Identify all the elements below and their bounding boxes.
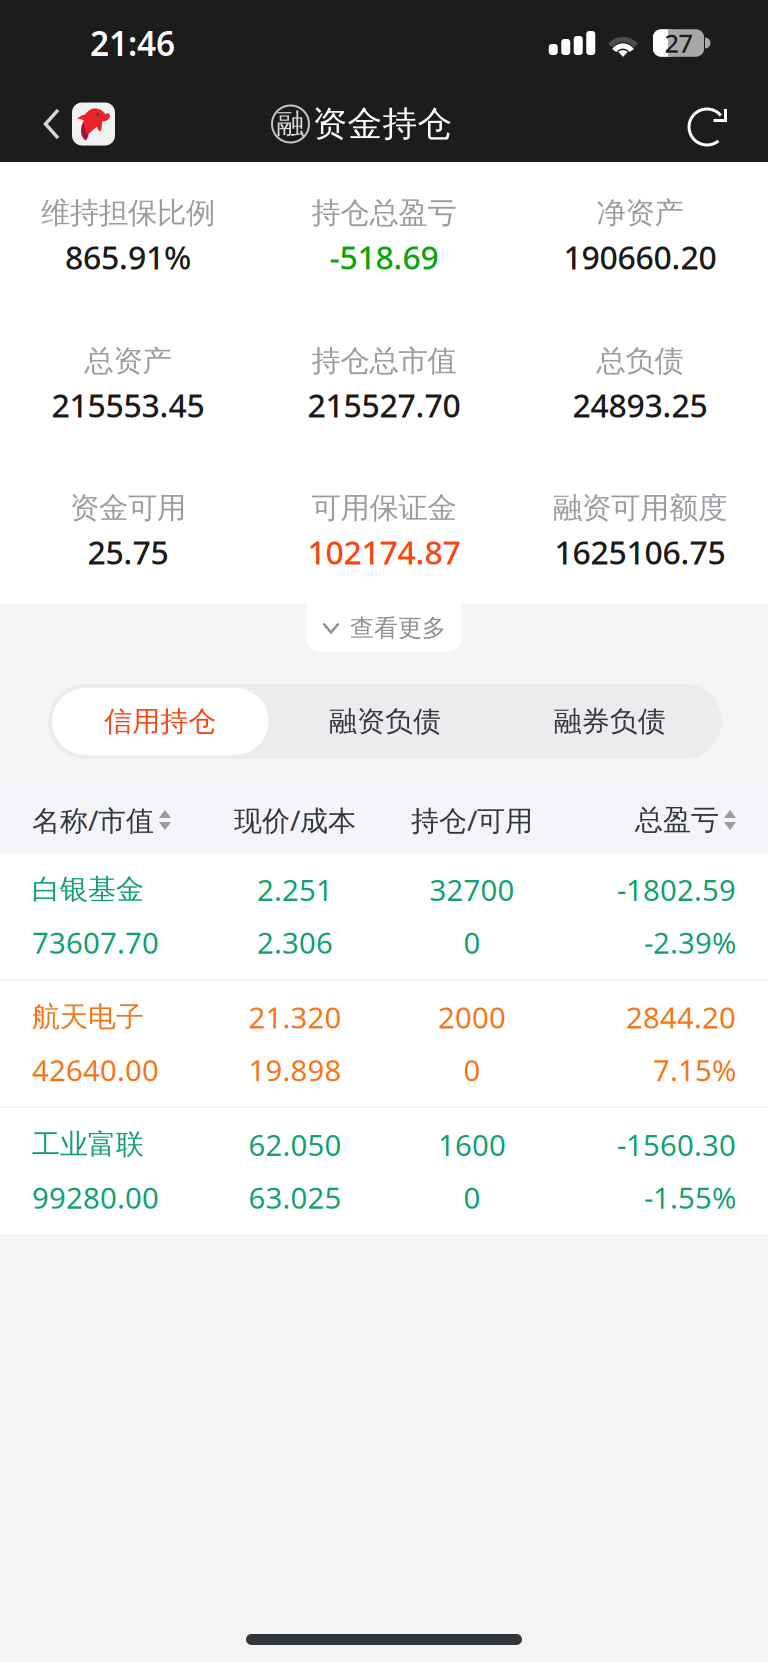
staticText: 总盈亏	[635, 803, 719, 837]
staticText: 持仓总市值	[311, 343, 456, 379]
staticText: 净资产	[596, 195, 683, 231]
button[interactable]: 工业富联	[0, 1108, 768, 1234]
staticText: 现价/成本	[234, 801, 356, 839]
staticText: 215553.45	[51, 384, 204, 426]
staticText: 融	[276, 107, 304, 141]
staticText: 白银基金	[32, 872, 144, 907]
staticText: 资金可用	[70, 490, 186, 526]
button[interactable]: Back	[0, 86, 125, 162]
staticText: 21.320	[248, 997, 341, 1036]
staticText: 32700	[429, 870, 514, 909]
button[interactable]: 融资负债	[273, 684, 497, 759]
staticText: 24893.25	[572, 384, 707, 426]
staticText: 0	[463, 1178, 480, 1217]
staticText: 资金持仓	[312, 103, 452, 145]
staticText: -2.39%	[644, 923, 736, 962]
staticText: 可用保证金	[311, 490, 456, 526]
staticText: 63.025	[248, 1178, 341, 1217]
staticText: -1560.30	[617, 1125, 736, 1164]
staticText: -518.69	[329, 236, 438, 278]
staticText: 62.050	[248, 1125, 341, 1164]
button[interactable]: 查看更多	[306, 594, 462, 652]
staticText: 7.15%	[653, 1050, 736, 1089]
staticText: 2.306	[257, 923, 333, 962]
staticText: 27	[664, 26, 692, 60]
staticText: 航天电子	[32, 1000, 144, 1034]
staticText: 融资可用额度	[553, 490, 727, 526]
staticText: 102174.87	[307, 531, 460, 573]
staticText: 21:46	[90, 21, 175, 65]
staticText: 1600	[438, 1125, 506, 1164]
button[interactable]: 融券负债	[497, 684, 722, 759]
button[interactable]: 白银基金	[0, 853, 768, 979]
staticText: 865.91%	[65, 236, 191, 278]
staticText: 25.75	[87, 531, 168, 573]
button[interactable]: 航天电子	[0, 980, 768, 1106]
staticText: 0	[463, 923, 480, 962]
staticText: 维持担保比例	[41, 195, 215, 231]
staticText: -1.55%	[644, 1178, 736, 1217]
staticText: 42640.00	[32, 1050, 159, 1089]
staticText: 2000	[438, 997, 506, 1036]
staticText: 总资产	[84, 343, 171, 379]
staticText: 19.898	[248, 1050, 341, 1089]
staticText: 持仓总盈亏	[311, 195, 456, 231]
staticText: 1625106.75	[554, 531, 725, 573]
staticText: 190660.20	[563, 236, 716, 278]
staticText: 工业富联	[32, 1127, 144, 1162]
staticText: 融资负债	[329, 704, 441, 739]
staticText: 查看更多	[350, 613, 446, 643]
staticText: 73607.70	[32, 923, 159, 962]
staticText: 总负债	[596, 343, 683, 379]
staticText: -1802.59	[617, 870, 736, 909]
staticText: 融券负债	[554, 704, 666, 739]
staticText: 持仓/可用	[411, 801, 533, 839]
staticText: 2.251	[257, 870, 333, 909]
staticText: 2844.20	[626, 997, 736, 1036]
staticText: 99280.00	[32, 1178, 159, 1217]
staticText: 215527.70	[307, 384, 460, 426]
staticText: 名称/市值	[32, 801, 154, 839]
button[interactable]: 信用持仓	[48, 684, 273, 759]
staticText: 0	[463, 1050, 480, 1089]
staticText: 信用持仓	[104, 704, 216, 739]
button[interactable]: Refresh	[666, 86, 768, 162]
